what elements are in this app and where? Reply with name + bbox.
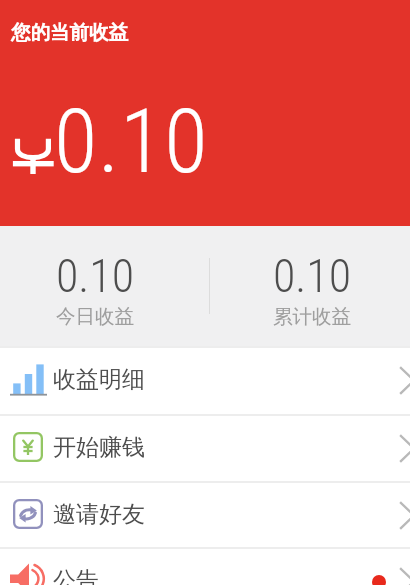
staticText: 0.10: [273, 249, 352, 303]
button[interactable]: 邀请好友: [0, 483, 410, 549]
button[interactable]: 开始赚钱: [0, 416, 410, 482]
staticText: 公告: [53, 566, 99, 585]
staticText: 您的当前收益: [11, 20, 128, 45]
staticText: 邀请好友: [53, 500, 145, 529]
staticText: 累计收益: [273, 304, 351, 329]
staticText: 0.10: [54, 89, 209, 193]
button[interactable]: 0.10: [218, 226, 406, 346]
staticText: 收益明细: [53, 365, 145, 394]
staticText: 开始赚钱: [53, 433, 145, 462]
staticText: 0.10: [56, 249, 135, 303]
button[interactable]: 公告: [0, 549, 410, 585]
staticText: 今日收益: [56, 304, 134, 329]
button[interactable]: 收益明细: [0, 348, 410, 414]
button[interactable]: 0.10: [0, 226, 190, 346]
